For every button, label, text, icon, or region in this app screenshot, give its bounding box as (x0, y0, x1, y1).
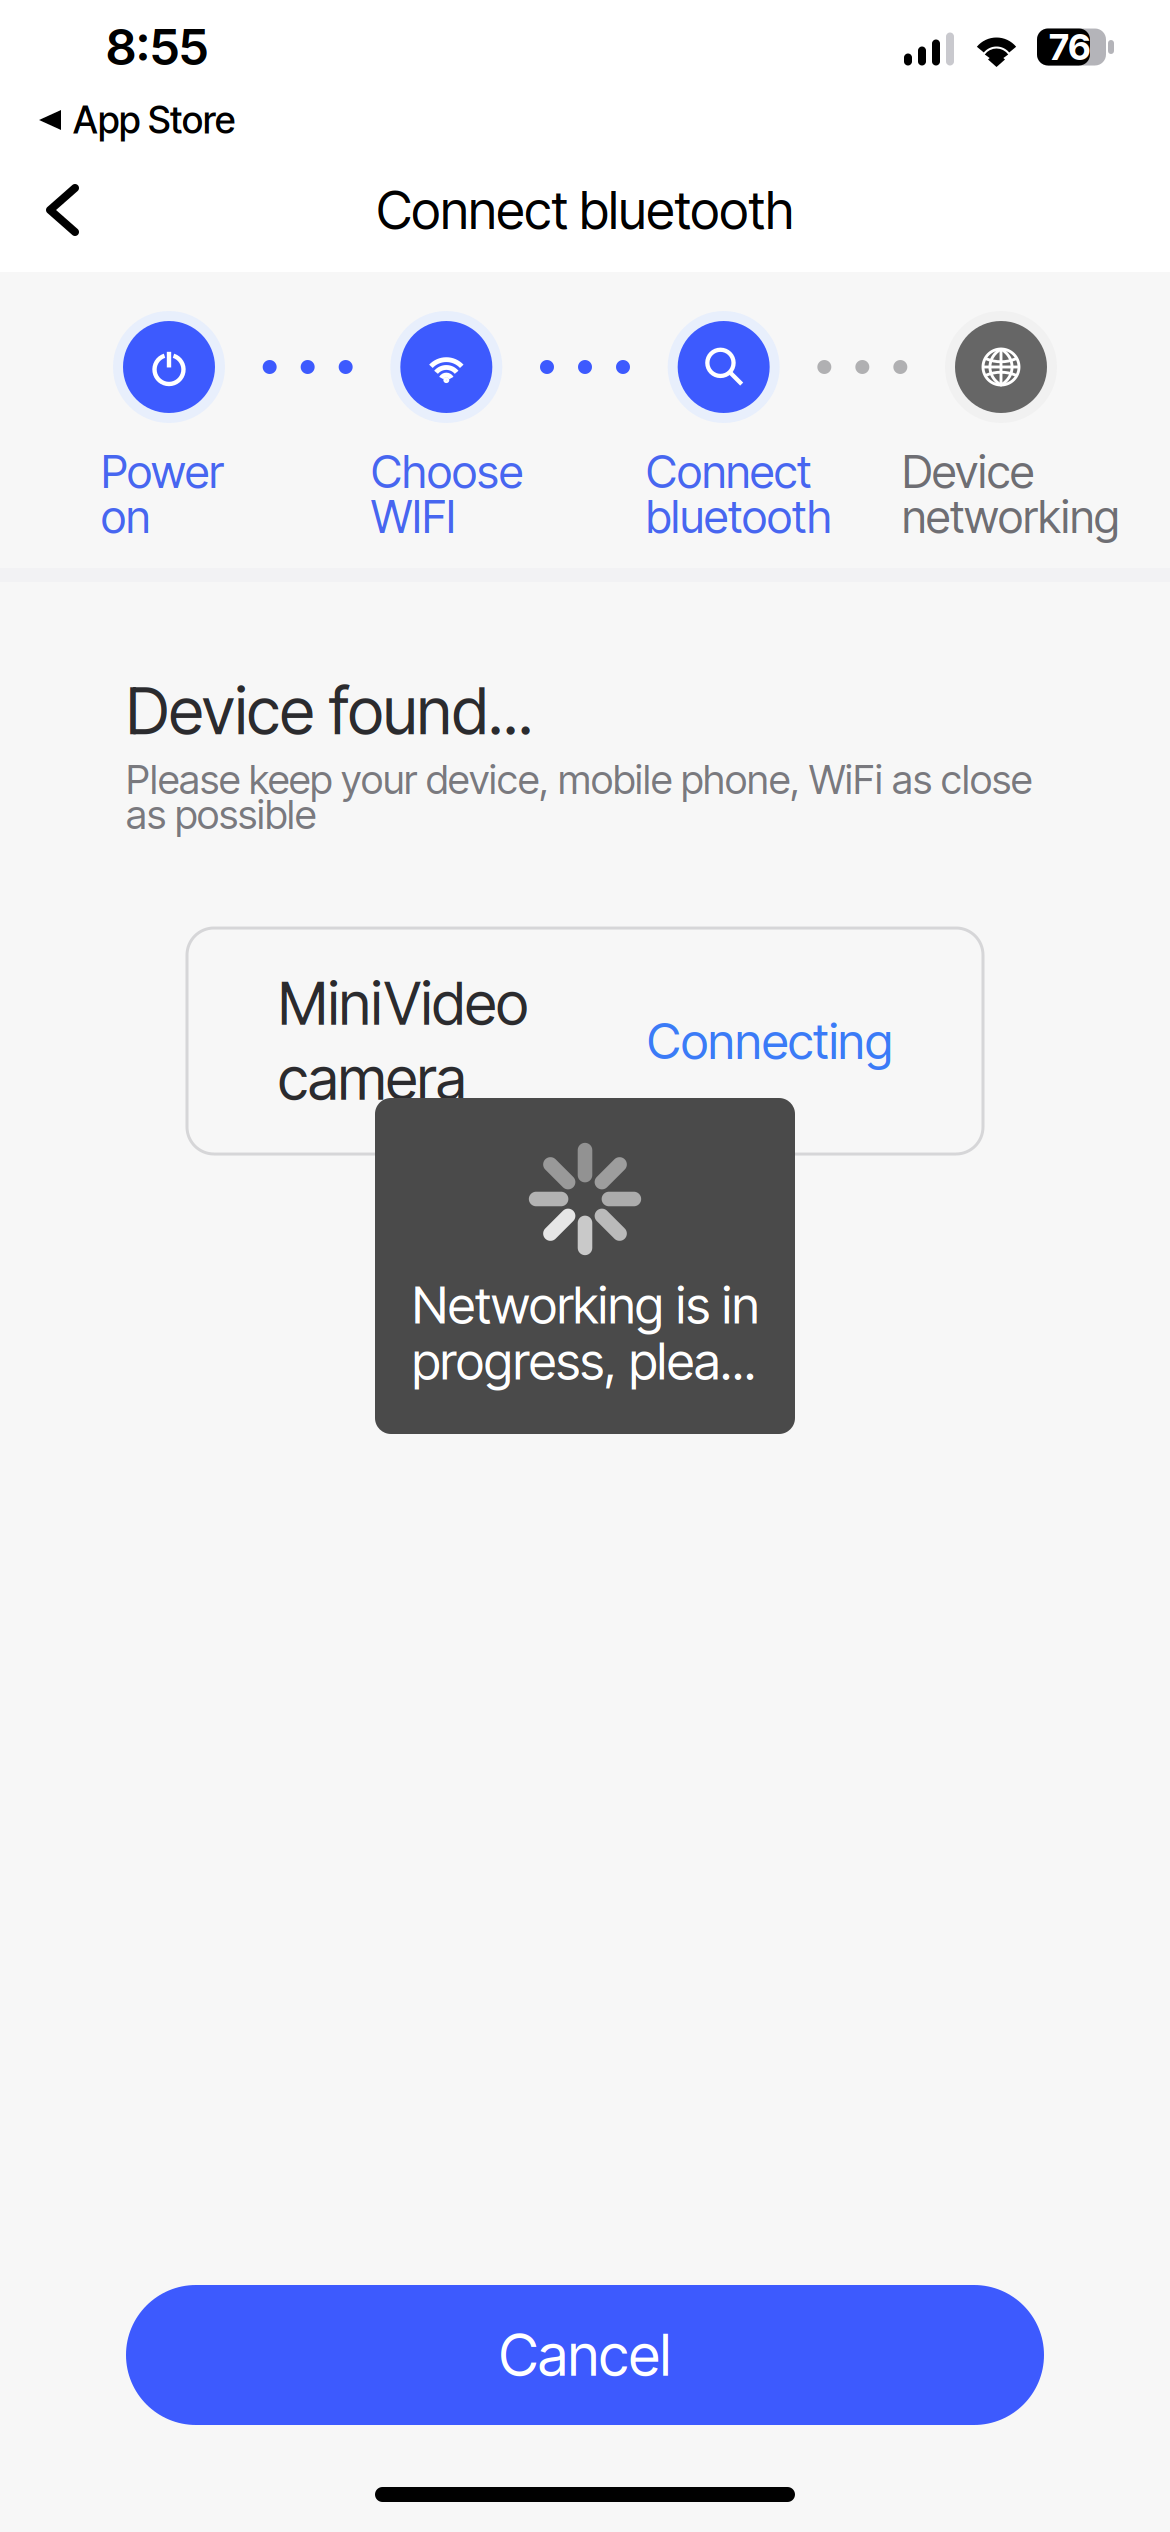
staticText: App Store (73, 97, 235, 143)
staticText: MiniVideo (278, 968, 528, 1039)
button[interactable]: Back (0, 159, 103, 261)
staticText: Device found... (126, 672, 533, 750)
staticText: Connect bluetooth (376, 178, 793, 241)
staticText: Cancel (499, 2320, 671, 2390)
button[interactable]: Device networking (945, 311, 1057, 423)
staticText: progress, plea... (412, 1330, 756, 1392)
staticText: 8:55 (106, 17, 208, 77)
button[interactable]: Choose WIFI (390, 311, 502, 423)
staticText: bluetooth (646, 489, 832, 544)
button[interactable]: Cancel (126, 2285, 1044, 2425)
button[interactable]: Connect bluetooth (668, 311, 780, 423)
staticText: Connect (646, 444, 811, 499)
staticText: WIFI (371, 489, 456, 544)
staticText: 76 (1049, 25, 1091, 69)
staticText: as possible (126, 790, 316, 839)
staticText: camera (278, 1043, 466, 1114)
staticText: Please keep your device, mobile phone, W… (126, 755, 1032, 804)
staticText: Device (902, 444, 1034, 499)
button[interactable]: Power on (113, 311, 225, 423)
staticText: on (101, 489, 150, 544)
button[interactable]: App Store (0, 92, 235, 148)
staticText: Choose (371, 444, 523, 499)
staticText: Connecting (647, 1011, 893, 1071)
staticText: Power (101, 444, 224, 499)
staticText: Networking is in (412, 1274, 759, 1336)
staticText: networking (902, 489, 1120, 544)
button[interactable]: MiniVideo (187, 928, 983, 1154)
